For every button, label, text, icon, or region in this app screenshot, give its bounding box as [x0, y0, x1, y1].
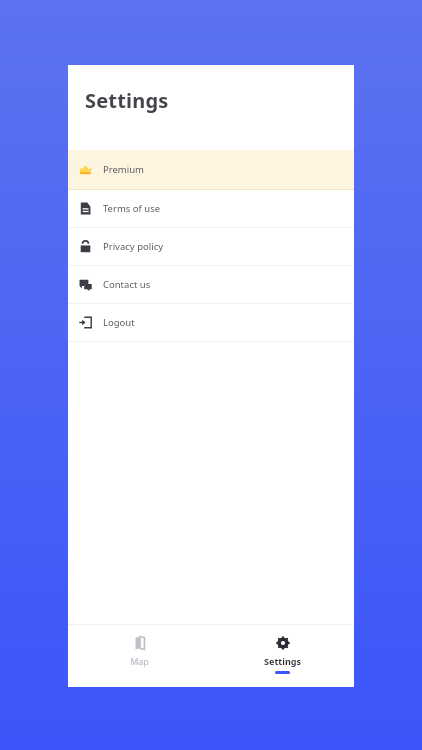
staticText: Premium: [103, 163, 144, 176]
staticText: Contact us: [103, 278, 151, 291]
button[interactable]: Privacy policy: [68, 228, 354, 265]
button[interactable]: Map: [68, 625, 211, 667]
button[interactable]: Logout: [68, 304, 354, 341]
staticText: Map: [130, 655, 149, 667]
staticText: Privacy policy: [103, 240, 164, 253]
staticText: Terms of use: [103, 202, 161, 215]
button[interactable]: Settings: [211, 625, 354, 674]
button[interactable]: Premium: [68, 150, 354, 189]
staticText: Settings: [85, 87, 169, 114]
button[interactable]: Contact us: [68, 266, 354, 303]
staticText: Logout: [103, 316, 135, 329]
button[interactable]: Terms of use: [68, 190, 354, 227]
staticText: Settings: [264, 655, 301, 667]
